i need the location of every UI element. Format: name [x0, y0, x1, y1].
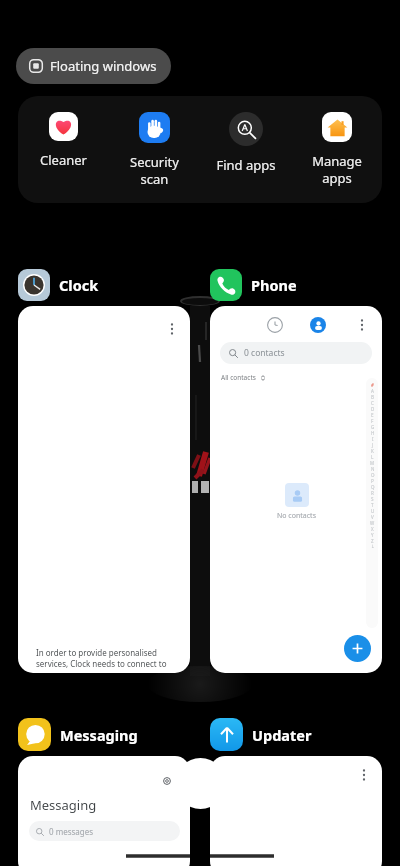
staticText: Messaging [30, 796, 97, 814]
staticText: D [371, 406, 375, 412]
button[interactable]: Security scan [109, 96, 200, 203]
staticText: Updater [252, 725, 312, 745]
button[interactable]: More options [356, 318, 368, 332]
staticText: X [371, 526, 374, 532]
button[interactable]: More options [210, 756, 382, 866]
staticText: R [371, 490, 374, 496]
staticText: K [371, 448, 374, 454]
staticText: Security scan [130, 153, 179, 188]
staticText: In order to provide personalised service… [36, 647, 167, 670]
button[interactable]: Cleaner [18, 96, 109, 203]
button[interactable]: Phone [210, 268, 297, 301]
button[interactable]: More options [358, 768, 370, 782]
staticText: P [371, 478, 374, 484]
staticText: Phone [251, 275, 297, 295]
staticText: All contacts [221, 373, 256, 382]
staticText: G [371, 424, 375, 430]
button[interactable]: Messaging [18, 756, 190, 866]
staticText: W [370, 520, 375, 526]
button[interactable]: Split screen handle [175, 758, 226, 809]
button[interactable]: Messaging [18, 718, 138, 751]
staticText: J [372, 442, 374, 448]
staticText: Clock [59, 275, 99, 295]
button[interactable]: More options [18, 306, 190, 673]
staticText: N [371, 466, 375, 472]
staticText: C [371, 400, 374, 406]
staticText: Cleaner [40, 151, 87, 169]
button[interactable]: More options [210, 306, 382, 673]
staticText: No contacts [277, 511, 316, 521]
staticText: Manage apps [312, 152, 362, 187]
staticText: O [371, 472, 375, 478]
staticText: Z [371, 538, 374, 544]
staticText: V [371, 514, 374, 520]
staticText: T [371, 502, 374, 508]
staticText: M [370, 460, 375, 466]
button[interactable]: Updater [210, 718, 312, 751]
staticText: E [371, 412, 374, 418]
staticText: Find apps [216, 156, 276, 174]
staticText: Floating windows [50, 57, 157, 75]
staticText: U [371, 508, 375, 514]
staticText: H [371, 430, 375, 436]
button[interactable]: Manage apps [291, 96, 382, 203]
button[interactable]: More options [166, 322, 178, 336]
button[interactable]: Clock [18, 268, 99, 301]
staticText: # [371, 382, 374, 388]
staticText: A [371, 388, 374, 394]
staticText: F [371, 418, 374, 424]
button[interactable]: Alphabet index [366, 378, 378, 628]
staticText: Q [371, 484, 375, 490]
staticText: ↓ [371, 544, 375, 549]
staticText: I [372, 436, 374, 442]
staticText: B [371, 394, 374, 400]
button[interactable]: Find apps [200, 96, 291, 203]
staticText: 0 contacts [244, 347, 285, 359]
staticText: Messaging [60, 725, 138, 745]
staticText: Y [371, 532, 374, 538]
staticText: 0 messages [49, 826, 94, 837]
staticText: L [371, 454, 374, 460]
button[interactable]: Floating windows [16, 48, 171, 84]
staticText: S [371, 496, 374, 502]
button[interactable]: Add contact [344, 635, 371, 662]
